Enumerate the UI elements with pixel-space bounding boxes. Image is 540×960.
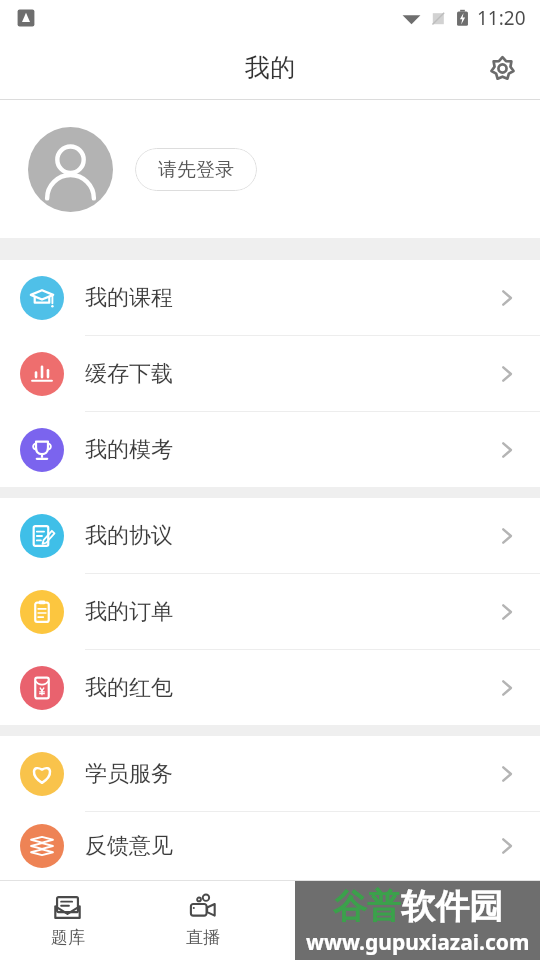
staticText: 课程 xyxy=(321,927,355,948)
staticText: www.gupuxiazai.com xyxy=(306,928,530,957)
button[interactable]: 请先登录 xyxy=(135,148,257,191)
button[interactable]: 我的订单 xyxy=(0,574,540,649)
staticText: 11:20 xyxy=(477,5,526,31)
staticText: 反馈意见 xyxy=(85,832,173,860)
button[interactable]: 我的课程 xyxy=(0,260,540,335)
button[interactable]: 课程 xyxy=(270,881,405,960)
staticText: 我的 xyxy=(245,52,295,83)
staticText: 请先登录 xyxy=(158,158,234,182)
button[interactable]: 缓存下载 xyxy=(0,336,540,411)
staticText: 我的协议 xyxy=(85,522,173,550)
staticText: 我的模考 xyxy=(85,436,173,464)
staticText: 我的订单 xyxy=(85,598,173,626)
staticText: 学员服务 xyxy=(85,760,173,788)
button[interactable]: 题库 xyxy=(0,881,135,960)
button[interactable]: Avatar xyxy=(28,127,113,212)
button[interactable]: 我的协议 xyxy=(0,498,540,573)
button[interactable]: 我的 xyxy=(405,881,540,960)
button[interactable]: 直播 xyxy=(135,881,270,960)
button[interactable]: Settings xyxy=(482,48,522,88)
staticText: 缓存下载 xyxy=(85,360,173,388)
button[interactable]: 反馈意见 xyxy=(0,812,540,880)
staticText: 我的课程 xyxy=(85,284,173,312)
staticText: 谷普 xyxy=(333,885,401,928)
button[interactable]: 我的红包 xyxy=(0,650,540,725)
button[interactable]: 学员服务 xyxy=(0,736,540,811)
staticText: 我的 xyxy=(456,927,490,948)
button[interactable]: 我的模考 xyxy=(0,412,540,487)
staticText: 题库 xyxy=(51,927,85,948)
staticText: 直播 xyxy=(186,927,220,948)
staticText: 我的红包 xyxy=(85,674,173,702)
staticText: 软件园 xyxy=(401,885,503,928)
